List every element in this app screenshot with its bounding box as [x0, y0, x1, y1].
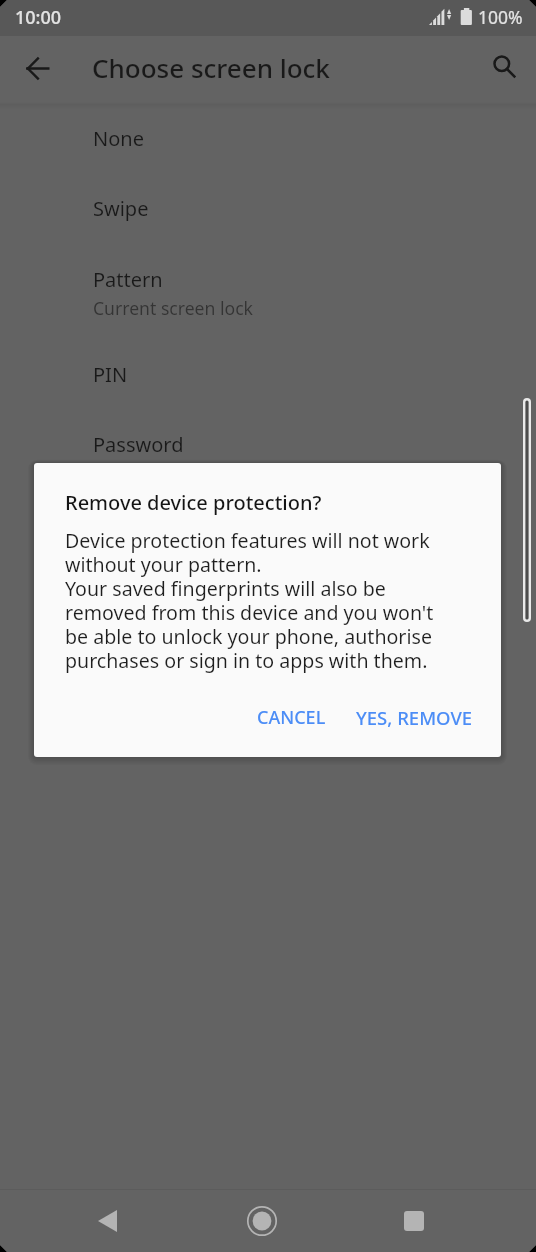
button[interactable]: Password — [0, 411, 536, 481]
button[interactable]: YES, REMOVE — [345, 697, 484, 738]
button[interactable]: Back — [79, 1192, 136, 1249]
staticText: Choose screen lock — [92, 50, 330, 85]
button[interactable]: Search — [481, 44, 529, 92]
staticText: Pattern — [93, 266, 163, 293]
staticText: 10:00 — [15, 5, 62, 30]
staticText: Remove device protection? — [65, 489, 322, 516]
button[interactable]: Recent apps — [385, 1192, 442, 1249]
staticText: CANCEL — [257, 705, 326, 730]
staticText: 100% — [478, 5, 523, 29]
button[interactable]: Swipe — [0, 175, 536, 245]
staticText: Device protection features will not work… — [65, 527, 434, 674]
staticText: Swipe — [93, 195, 149, 222]
staticText: Current screen lock — [93, 296, 253, 320]
staticText: None — [93, 125, 144, 152]
button[interactable]: Home — [233, 1192, 290, 1249]
staticText: YES, REMOVE — [356, 705, 473, 730]
button[interactable]: CANCEL — [246, 697, 337, 738]
button[interactable]: PIN — [0, 341, 536, 411]
button[interactable]: Navigate up — [14, 45, 62, 93]
staticText: PIN — [93, 361, 128, 388]
button[interactable]: None — [0, 105, 536, 175]
button[interactable]: Pattern — [0, 248, 536, 341]
staticText: Password — [93, 431, 184, 458]
